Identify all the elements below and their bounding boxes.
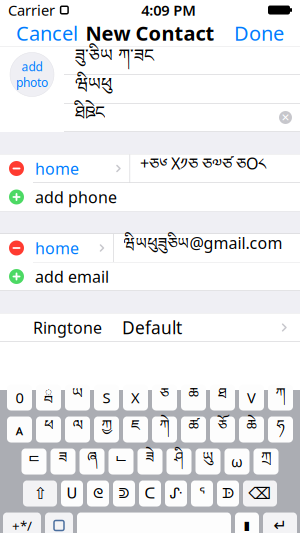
staticText: ྦ (44, 377, 52, 418)
staticText: Carrier (8, 0, 55, 20)
staticText: ᄃ (27, 453, 40, 470)
button[interactable]: add email (0, 262, 300, 290)
staticText: Ringtone (33, 317, 102, 338)
staticText: ᔚ (169, 485, 182, 502)
button[interactable]: ᔚ (165, 480, 187, 506)
button[interactable]: 0 (7, 384, 32, 410)
staticText: ཆེ (246, 409, 256, 450)
button[interactable]: ཐ (210, 384, 235, 410)
button[interactable]: home (0, 234, 300, 262)
staticText: ཅོ (218, 409, 227, 450)
staticText: ▮ (243, 519, 250, 532)
staticText: ω (231, 452, 243, 471)
staticText: ᗬ (222, 486, 234, 501)
staticText: X (131, 388, 140, 407)
button[interactable]: S (94, 384, 119, 410)
staticText: ཤི (174, 441, 183, 482)
staticText: ཕ (44, 409, 53, 450)
button[interactable]: ཞ (79, 448, 104, 474)
button[interactable]: ཀྲ (253, 448, 278, 474)
staticText: ལ (72, 409, 82, 450)
staticText: ᑕ (144, 485, 155, 502)
button[interactable]: X (123, 384, 148, 410)
button[interactable]: ཅ (152, 384, 177, 410)
staticText: 0 (15, 388, 23, 407)
staticText: ᄂ (114, 453, 127, 470)
button[interactable]: ཀ (268, 384, 293, 410)
button[interactable]: ཚ (181, 416, 206, 442)
button[interactable]: ཇ (123, 416, 148, 442)
staticText: ཟ (58, 441, 67, 482)
button[interactable]: ཝིཡཕུ (64, 75, 300, 103)
staticText: home (35, 237, 79, 259)
button[interactable]: add phone (0, 183, 300, 211)
button[interactable]: Next keyboard (45, 512, 73, 533)
staticText: ཞ (87, 441, 97, 482)
button[interactable]: ᕲ (113, 480, 135, 506)
staticText: ᘓ (93, 486, 103, 501)
button[interactable]: ᕐ (191, 480, 213, 506)
staticText: S (102, 388, 110, 407)
button[interactable]: Done (224, 14, 294, 52)
button[interactable]: ᑕ (139, 480, 161, 506)
button[interactable]: Cancel (6, 14, 88, 52)
button[interactable]: ᄃ (21, 448, 46, 474)
button[interactable]: ཡ (65, 384, 90, 410)
staticText: ᴀ (15, 420, 23, 439)
button[interactable]: ཟེ (137, 448, 162, 474)
button[interactable]: ཡུ (195, 448, 220, 474)
button[interactable]: ལ (65, 416, 90, 442)
button[interactable]: ཟུ་ཅིཡ ཀ་ཟང (64, 46, 300, 74)
button[interactable]: ᑌ (61, 480, 83, 506)
button[interactable]: space (77, 512, 231, 533)
staticText: add email (35, 266, 109, 287)
button[interactable]: add (10, 52, 54, 96)
staticText: V (247, 388, 256, 407)
button[interactable]: ཀེ (152, 416, 177, 442)
staticText: +*/ (12, 517, 32, 533)
staticText: add (21, 59, 42, 74)
staticText: Default (122, 316, 182, 339)
button[interactable]: ཅོ (210, 416, 235, 442)
button[interactable]: Separator (235, 512, 259, 533)
button[interactable]: +*/ (3, 512, 41, 533)
button[interactable]: ཧ (268, 416, 293, 442)
button[interactable]: ཟ (50, 448, 75, 474)
button[interactable]: ཕ (36, 416, 61, 442)
button[interactable]: ཀྱ (94, 416, 119, 442)
staticText: New Contact (85, 20, 214, 46)
staticText: ཝིཡཕུ (75, 65, 112, 113)
staticText: ཆ (188, 377, 198, 418)
button[interactable]: ᘓ (87, 480, 109, 506)
staticText: ཝིཡཕུཟུཅིཡ@gmail.com (124, 226, 283, 270)
button[interactable]: ω (224, 448, 249, 474)
staticText: ᕲ (118, 486, 129, 501)
staticText: ཀྱ (101, 409, 111, 450)
staticText: ཐིཋེང (75, 94, 105, 141)
button[interactable]: ᴀ (7, 416, 32, 442)
button[interactable]: ཆ (181, 384, 206, 410)
staticText: Cancel (16, 20, 78, 46)
staticText: ཡ (72, 377, 83, 418)
button[interactable]: V (239, 384, 264, 410)
button[interactable]: Delete (243, 480, 277, 506)
staticText: ⇧ (33, 484, 46, 503)
staticText (151, 510, 157, 533)
button[interactable]: ᗬ (217, 480, 239, 506)
staticText: ✕ (281, 111, 290, 123)
staticText: ཚ (188, 409, 198, 450)
button[interactable]: ཆེ (239, 416, 264, 442)
button[interactable]: Return (263, 512, 297, 533)
staticText: ᑌ (66, 485, 77, 502)
button[interactable]: ཐིཋེང (64, 103, 300, 131)
staticText: ↵ (273, 516, 286, 533)
button[interactable]: ᄂ (108, 448, 133, 474)
button[interactable]: ཤི (166, 448, 191, 474)
staticText: ཀྲ (261, 441, 271, 482)
button[interactable]: home (0, 154, 300, 182)
button[interactable]: Ringtone (0, 313, 300, 341)
button[interactable]: Shift (23, 480, 57, 506)
staticText: ཐ (218, 377, 227, 418)
button[interactable]: ྦ (36, 384, 61, 410)
